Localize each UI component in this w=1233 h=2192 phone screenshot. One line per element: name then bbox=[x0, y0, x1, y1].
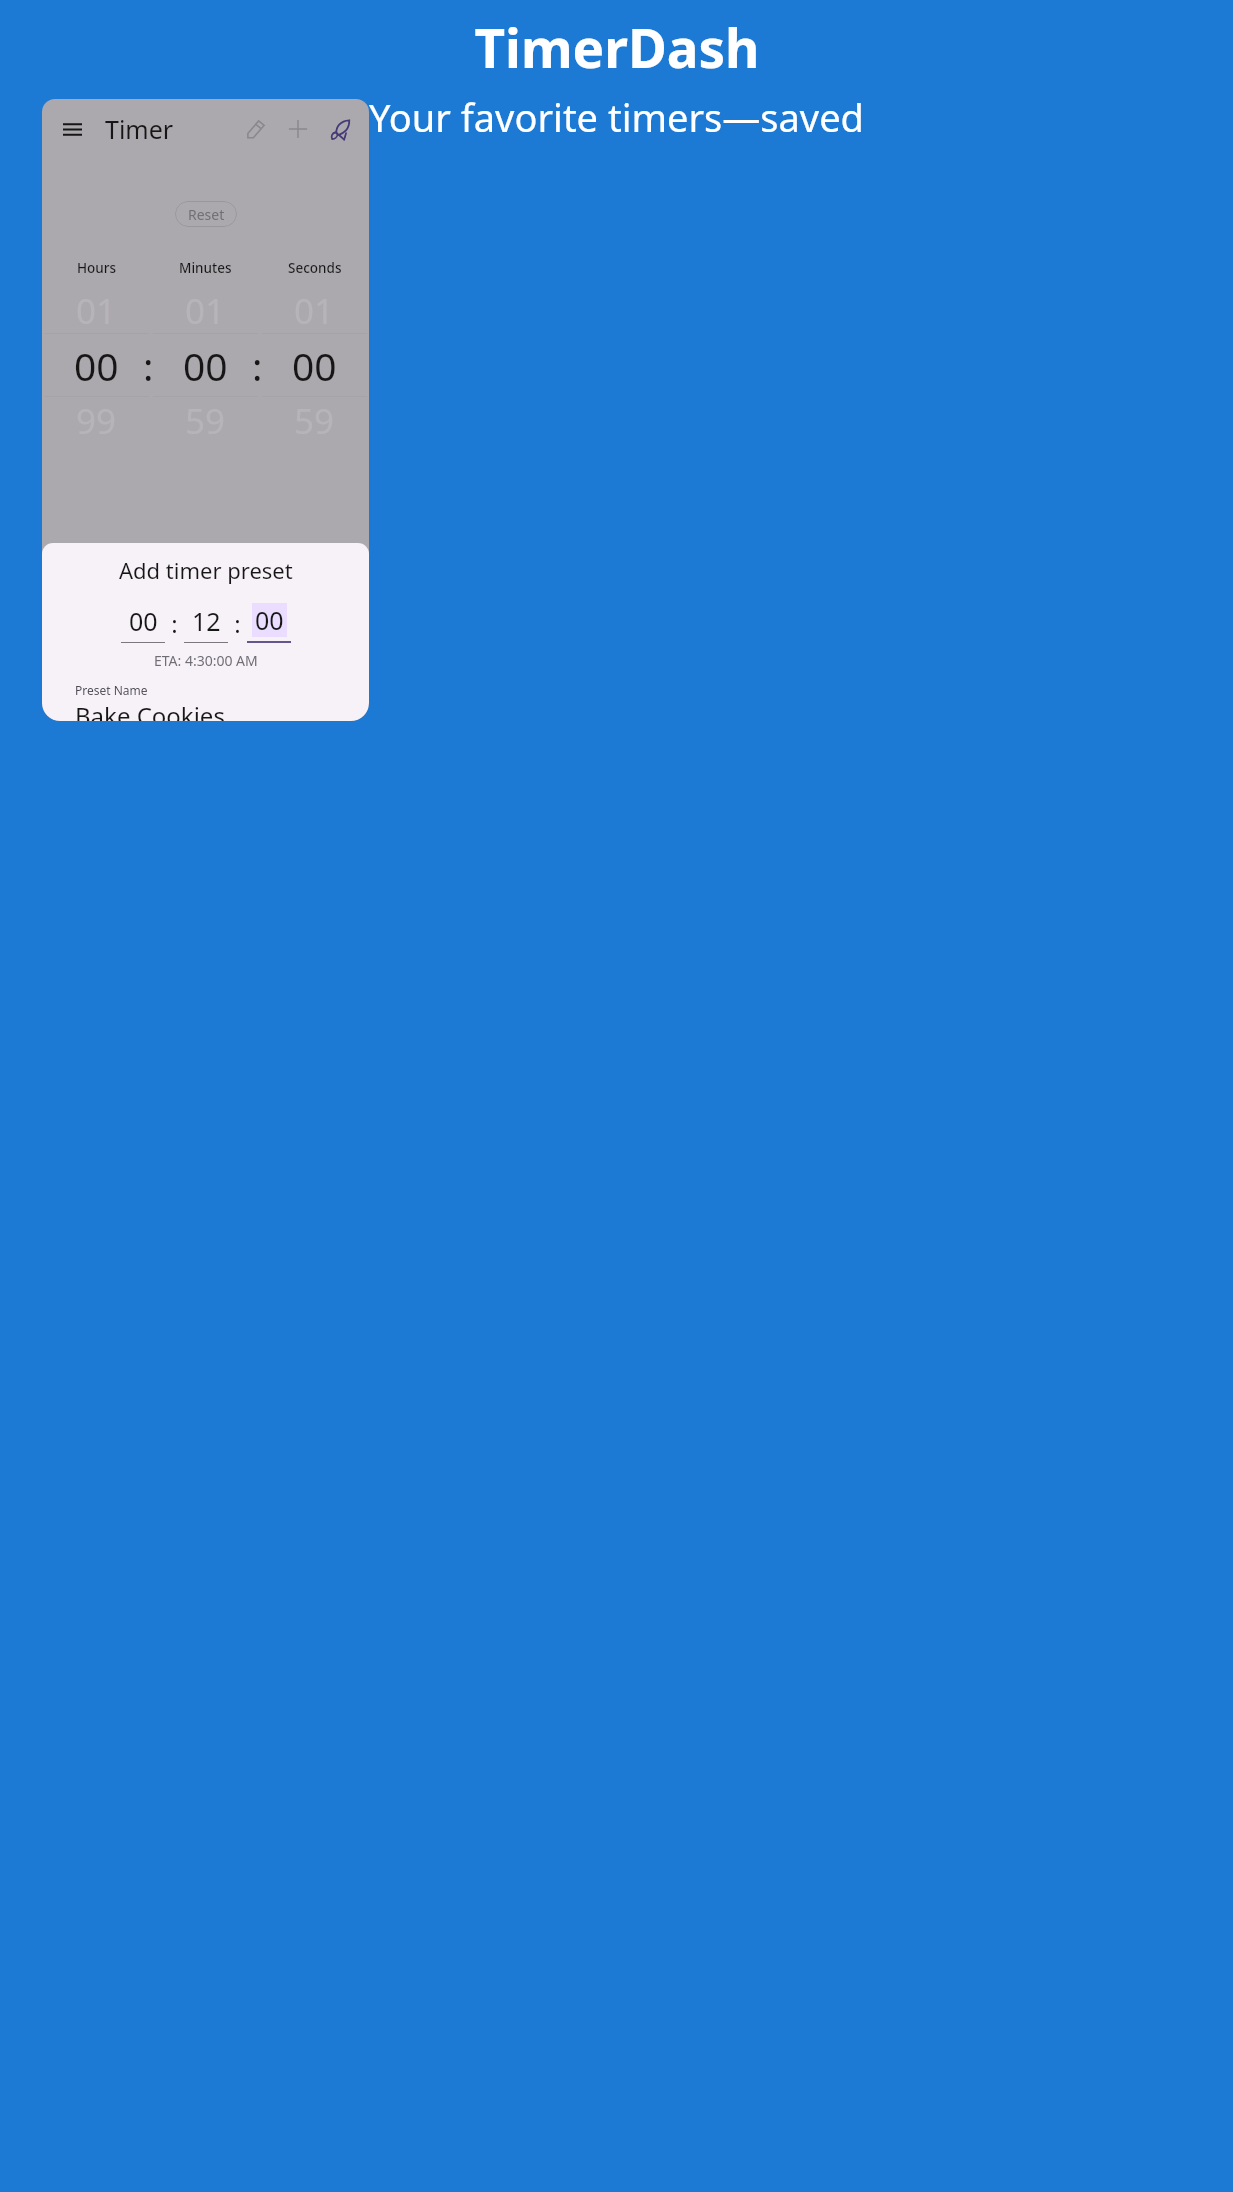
button[interactable]: 00 bbox=[121, 604, 165, 643]
button[interactable]: 00 bbox=[247, 603, 291, 643]
button[interactable]: Edit presets bbox=[235, 108, 277, 150]
staticText: 01 bbox=[294, 287, 335, 333]
staticText: 00 bbox=[74, 339, 119, 392]
staticText: 00 bbox=[183, 339, 228, 392]
staticText: 00 bbox=[292, 339, 337, 392]
staticText: Preset Name bbox=[75, 682, 148, 698]
button[interactable]: Open navigation menu bbox=[52, 109, 92, 149]
staticText: 59 bbox=[185, 397, 226, 443]
staticText: : bbox=[252, 339, 263, 392]
staticText: 00 bbox=[129, 604, 158, 638]
staticText: Hours bbox=[77, 259, 117, 277]
staticText: Reset bbox=[188, 205, 225, 224]
staticText: 01 bbox=[185, 287, 226, 333]
staticText: Add timer preset bbox=[119, 555, 293, 585]
button[interactable]: Start timer bbox=[319, 108, 361, 150]
staticText: : bbox=[228, 607, 247, 640]
staticText: Minutes bbox=[179, 259, 232, 277]
staticText: 99 bbox=[76, 397, 117, 443]
staticText: ETA: 4:30:00 AM bbox=[154, 651, 258, 670]
staticText: 01 bbox=[76, 287, 117, 333]
staticText: Timer bbox=[105, 112, 174, 146]
staticText: Bake Cookies bbox=[75, 699, 225, 721]
staticText: TimerDash bbox=[474, 11, 760, 83]
button[interactable]: Add timer preset bbox=[277, 108, 319, 150]
staticText: 59 bbox=[294, 397, 335, 443]
staticText: 00 bbox=[255, 603, 284, 637]
staticText: Your favorite timers—saved bbox=[369, 91, 864, 143]
staticText: Seconds bbox=[288, 259, 342, 277]
staticText: : bbox=[165, 607, 184, 640]
staticText: 12 bbox=[192, 604, 221, 638]
button[interactable]: 12 bbox=[184, 604, 228, 643]
staticText: : bbox=[143, 339, 154, 392]
button[interactable]: Reset bbox=[175, 201, 237, 227]
